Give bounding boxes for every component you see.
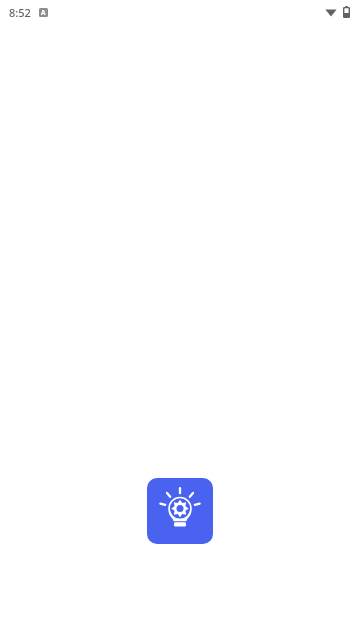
- button[interactable]: Smart light settings: [147, 478, 213, 544]
- staticText: A: [41, 8, 46, 17]
- staticText: 8:52: [9, 5, 31, 20]
